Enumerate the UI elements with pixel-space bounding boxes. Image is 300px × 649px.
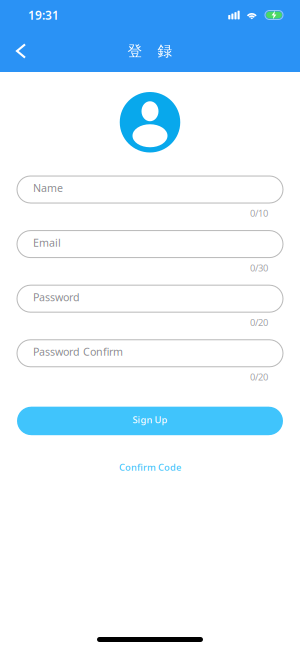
staticText: 登 録 [127, 42, 172, 60]
staticText: Email [33, 235, 61, 250]
staticText: 0/20 [250, 316, 268, 329]
staticText: Name [33, 181, 63, 195]
button[interactable]: Confirm Code [119, 461, 181, 473]
staticText: Confirm Code [119, 461, 181, 473]
staticText: 19:31 [28, 7, 59, 23]
staticText: 0/30 [250, 262, 268, 274]
staticText: Sign Up [132, 413, 167, 426]
button[interactable]: Back [0, 30, 42, 72]
button[interactable]: Sign Up [17, 407, 283, 435]
staticText: 0/20 [250, 371, 268, 383]
staticText: Password [33, 290, 80, 304]
staticText: Password Confirm [33, 345, 123, 359]
staticText: 0/10 [250, 207, 268, 219]
